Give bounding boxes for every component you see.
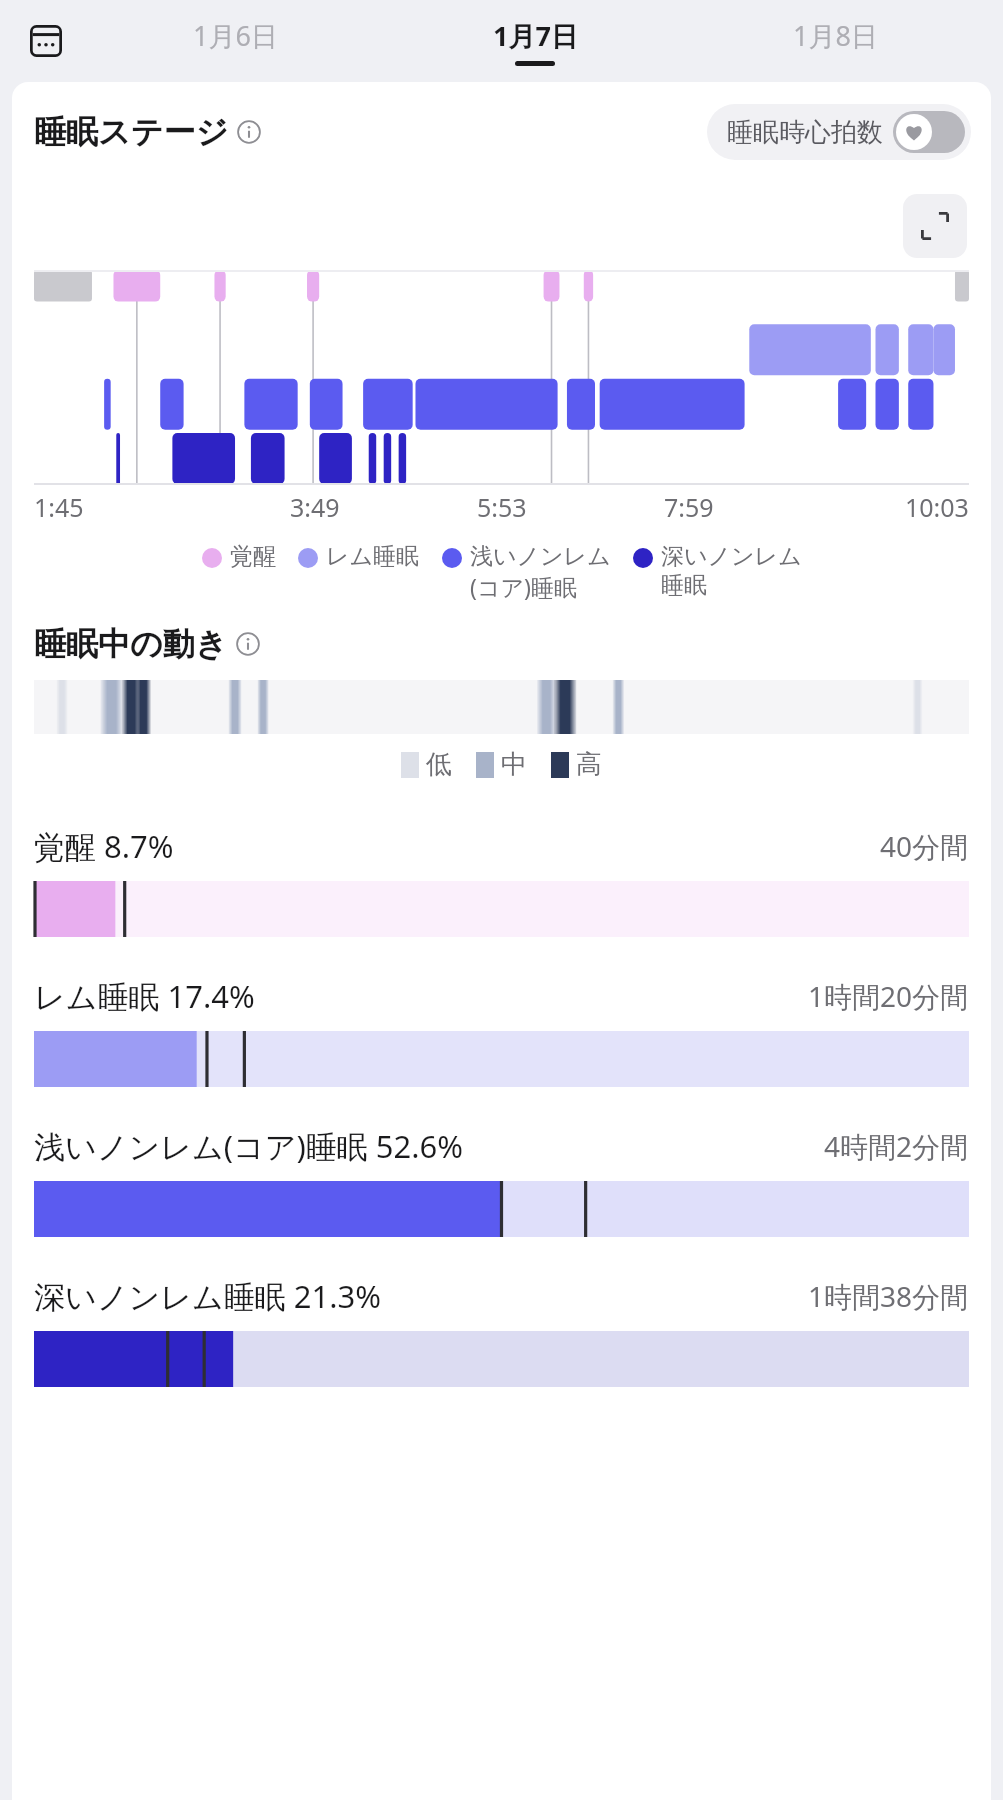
staticText: レム睡眠 17.4% — [34, 975, 255, 1017]
button[interactable]: 1月6日 — [86, 0, 385, 82]
staticText: 1月8日 — [793, 17, 878, 54]
staticText: 中 — [501, 748, 527, 781]
staticText: 1時間20分間 — [808, 977, 969, 1015]
button[interactable]: 1月8日 — [685, 0, 985, 82]
staticText: 深いノンレム — [661, 542, 802, 571]
button[interactable]: 睡眠ステージ — [34, 112, 261, 152]
button[interactable]: カレンダー — [24, 19, 68, 63]
staticText: 覚醒 8.7% — [34, 825, 174, 867]
staticText: 睡眠中の動き — [34, 624, 228, 664]
staticText: 1:45 — [34, 490, 84, 524]
staticText: 1時間38分間 — [808, 1277, 969, 1315]
staticText: 睡眠 — [661, 571, 707, 600]
staticText: レム睡眠 — [326, 542, 420, 571]
staticText: 睡眠ステージ — [34, 112, 229, 152]
staticText: 深いノンレム睡眠 21.3% — [34, 1275, 381, 1317]
staticText: 5:53 — [477, 490, 527, 524]
button[interactable]: 拡大 — [903, 194, 967, 258]
staticText: 浅いノンレム(コア)睡眠 52.6% — [34, 1125, 464, 1167]
staticText: 7:59 — [664, 490, 714, 524]
button[interactable]: 睡眠時心拍数 — [707, 104, 971, 160]
button[interactable]: 1月7日 — [385, 0, 685, 82]
staticText: 1月7日 — [493, 17, 578, 54]
staticText: 40分間 — [880, 827, 969, 865]
staticText: 1月6日 — [193, 17, 278, 54]
staticText: 10:03 — [905, 490, 969, 524]
staticText: 高 — [576, 748, 602, 781]
staticText: 3:49 — [290, 490, 340, 524]
staticText: (コア)睡眠 — [470, 571, 577, 602]
staticText: 4時間2分間 — [824, 1127, 969, 1165]
staticText: 低 — [426, 748, 452, 781]
staticText: 睡眠時心拍数 — [727, 116, 883, 149]
staticText: 浅いノンレム — [470, 542, 611, 571]
button[interactable]: 睡眠中の動き — [34, 624, 991, 664]
staticText: 覚醒 — [230, 542, 276, 571]
